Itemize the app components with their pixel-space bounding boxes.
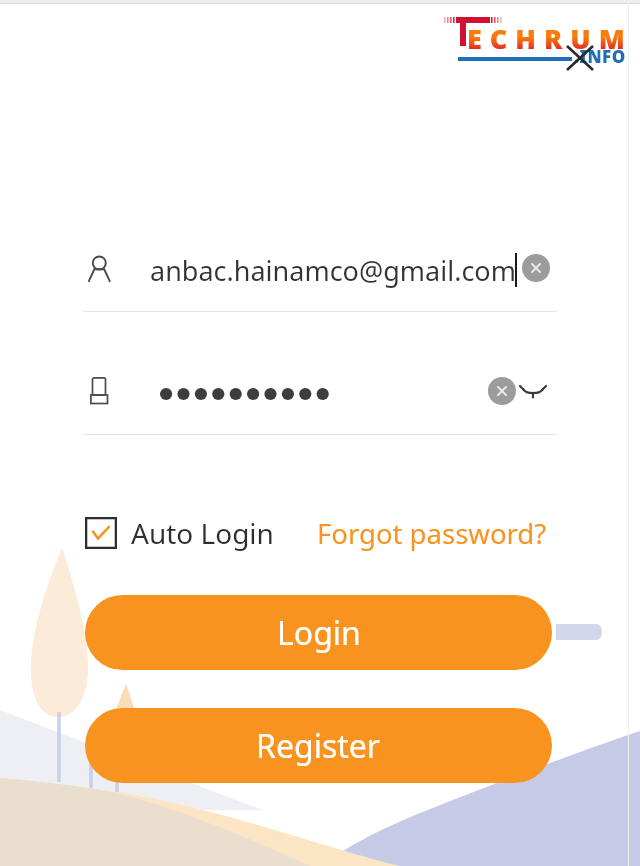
button[interactable]: Show password [519,378,549,408]
button[interactable]: Auto Login [85,513,274,553]
staticText: Auto Login [131,514,274,552]
staticText: ECHRUM [467,20,633,57]
button[interactable] [160,376,492,412]
staticText: Register [256,724,381,768]
button[interactable]: Clear email [522,254,550,282]
button[interactable]: anbac.hainamco@gmail.com [150,252,518,288]
staticText: Forgot password? [317,515,547,552]
button[interactable]: Clear password [488,377,516,405]
button[interactable]: Login [85,595,552,670]
staticText: anbac.hainamco@gmail.com [150,252,516,288]
button[interactable]: Forgot password? [317,513,547,553]
staticText: Login [277,611,361,655]
staticText: .INFO [574,45,626,68]
button[interactable]: Register [85,708,552,783]
